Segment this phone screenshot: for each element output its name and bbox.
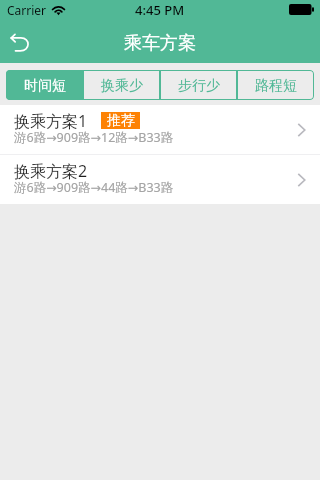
staticText: 步行少: [178, 77, 220, 95]
staticText: 路程短: [255, 77, 297, 95]
staticText: 游6路→909路→44路→B33路: [14, 179, 174, 196]
staticText: 游6路→909路→12路→B33路: [14, 129, 174, 146]
staticText: 时间短: [24, 77, 66, 95]
staticText: 乘车方案: [124, 32, 196, 55]
staticText: 4:45 PM: [135, 1, 185, 19]
staticText: 换乘方案2: [14, 160, 88, 182]
button[interactable]: 路程短: [237, 70, 314, 100]
staticText: 换乘方案1: [14, 110, 88, 132]
button[interactable]: Back: [0, 19, 40, 63]
button[interactable]: 时间短: [6, 70, 83, 100]
staticText: 换乘少: [101, 77, 143, 95]
staticText: Carrier: [7, 2, 47, 18]
button[interactable]: 换乘少: [83, 70, 160, 100]
button[interactable]: 换乘方案1: [0, 105, 320, 154]
button[interactable]: 步行少: [160, 70, 237, 100]
button[interactable]: 换乘方案2: [0, 155, 320, 204]
staticText: 推荐: [107, 112, 135, 129]
